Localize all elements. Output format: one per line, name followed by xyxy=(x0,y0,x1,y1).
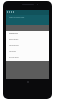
button[interactable]: Select account type xyxy=(6,15,49,25)
button[interactable]: Trade Purchase Rate xyxy=(6,42,49,48)
staticText: ACCOUNT TYPE xyxy=(9,33,18,35)
staticText: Sample Clarification xyxy=(9,39,19,40)
staticText: Select account type xyxy=(9,16,25,18)
staticText: Trade Purchase Rate xyxy=(9,45,19,46)
staticText: Trade Variable xyxy=(9,51,16,52)
button[interactable]: Trade Variable xyxy=(6,48,49,54)
staticText: Value 1000 Measure xyxy=(9,57,19,58)
button[interactable]: Sample Clarification xyxy=(6,36,49,42)
button[interactable]: Value 1000 Measure xyxy=(6,54,49,60)
